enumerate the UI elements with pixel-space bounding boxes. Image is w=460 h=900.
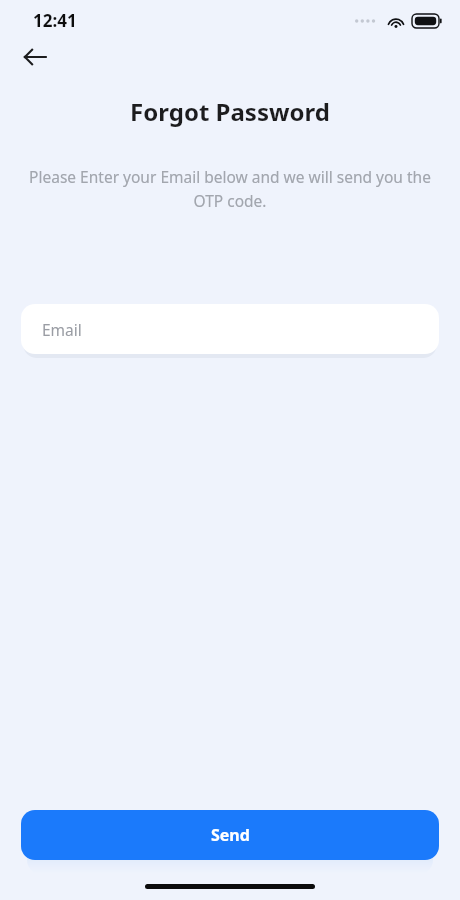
staticText: Forgot Password: [130, 95, 330, 128]
staticText: 12:41: [33, 9, 77, 32]
button[interactable]: Send: [21, 810, 439, 860]
staticText: Send: [211, 824, 250, 846]
button[interactable]: Email: [21, 304, 439, 354]
staticText: Email: [42, 319, 82, 340]
staticText: Please Enter your Email below and we wil…: [26, 166, 434, 211]
button[interactable]: Back: [14, 36, 56, 78]
